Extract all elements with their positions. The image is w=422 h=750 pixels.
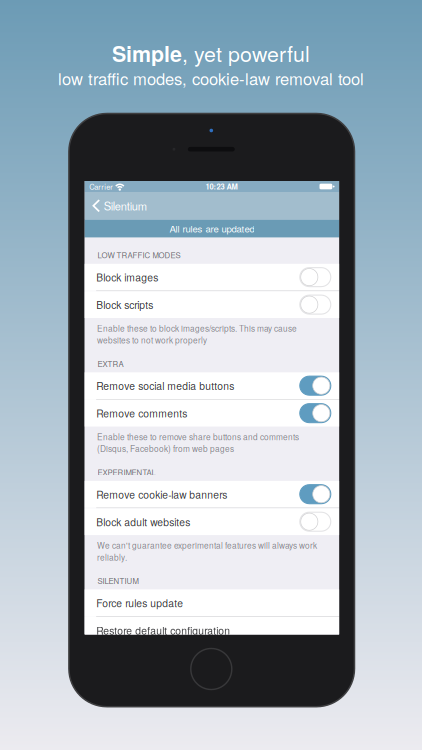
staticText: Remove comments	[96, 406, 187, 420]
staticText: Enable these to remove share buttons and…	[97, 431, 299, 454]
staticText: Force rules update	[96, 595, 183, 610]
staticText: We can't guarantee experimental features…	[97, 539, 317, 563]
staticText: Restore default configuration	[96, 623, 230, 638]
staticText: Simple, yet powerful	[112, 38, 310, 68]
button[interactable]: Block scripts	[85, 291, 339, 318]
staticText: All rules are updated	[169, 222, 254, 235]
button[interactable]: Remove cookie-law banners	[85, 481, 339, 507]
staticText: Block images	[96, 270, 158, 284]
staticText: Enable these to block images/scripts. Th…	[97, 322, 297, 346]
staticText: 10:23 AM	[206, 181, 238, 192]
button[interactable]: Remove comments	[85, 400, 339, 426]
staticText: LOW TRAFFIC MODES	[97, 249, 180, 261]
button[interactable]: Block adult websites	[85, 508, 339, 535]
staticText: Block scripts	[96, 297, 153, 312]
button[interactable]: Restore default configuration	[85, 617, 339, 644]
staticText: Remove cookie-law banners	[96, 487, 227, 501]
staticText: low traffic modes, cookie-law removal to…	[58, 66, 364, 90]
staticText: Silentium	[104, 198, 147, 214]
button[interactable]: Block images	[85, 264, 339, 290]
staticText: Carrier	[89, 181, 113, 192]
staticText: Block adult websites	[96, 514, 190, 529]
button[interactable]: Remove social media buttons	[85, 372, 339, 399]
staticText: SILENTIUM	[97, 575, 138, 586]
staticText: Remove social media buttons	[96, 378, 234, 393]
staticText: EXPERIMENTAL	[97, 466, 155, 478]
button[interactable]: Force rules update	[85, 589, 339, 616]
staticText: EXTRA	[97, 358, 123, 369]
button[interactable]: Back to Silentium	[85, 192, 147, 220]
